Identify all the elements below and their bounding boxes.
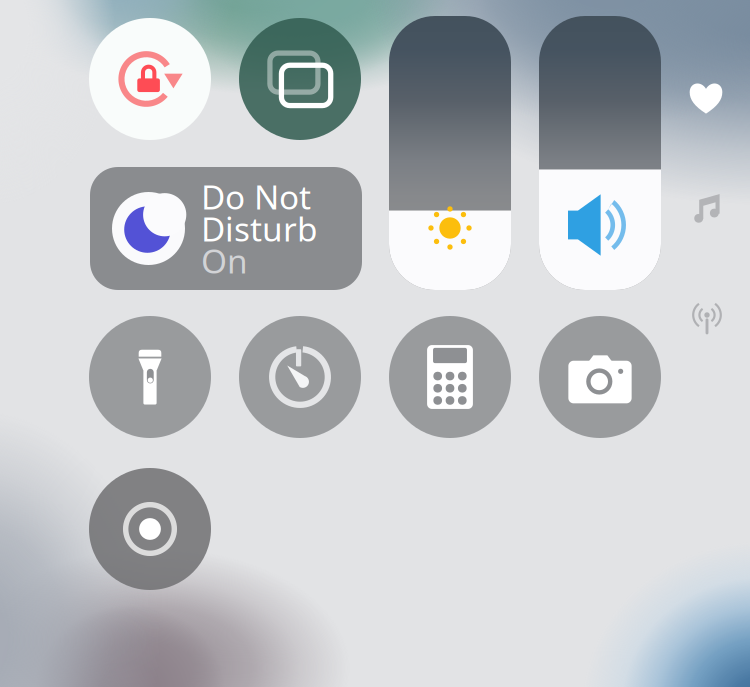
- button[interactable]: Camera: [539, 316, 661, 438]
- button[interactable]: Brightness: [389, 16, 511, 290]
- button[interactable]: Flashlight: [89, 316, 211, 438]
- button[interactable]: Health: [684, 76, 728, 120]
- button[interactable]: Volume: [539, 16, 661, 290]
- button[interactable]: AirPlay: [684, 296, 730, 342]
- staticText: Disturb: [201, 206, 318, 251]
- button[interactable]: Rotation Lock: [89, 18, 211, 140]
- button[interactable]: Now Playing: [684, 188, 728, 232]
- staticText: On: [201, 238, 248, 283]
- button[interactable]: Timer: [239, 316, 361, 438]
- button[interactable]: Calculator: [389, 316, 511, 438]
- staticText: Do Not: [201, 174, 311, 219]
- button[interactable]: Screen Recording: [89, 468, 211, 590]
- button[interactable]: Screen Mirroring: [239, 18, 361, 140]
- button[interactable]: Do Not: [90, 167, 362, 290]
